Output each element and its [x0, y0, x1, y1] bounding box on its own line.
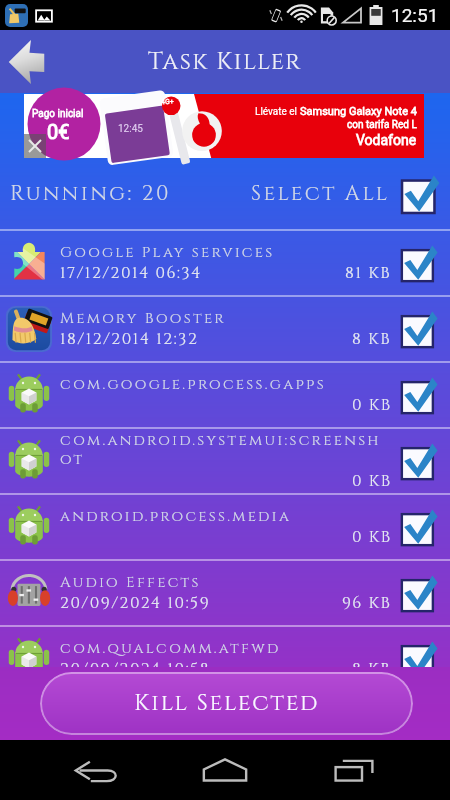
- staticText: Task Killer: [148, 46, 302, 78]
- button[interactable]: Back: [0, 33, 52, 91]
- staticText: com.google.process.gapps: [60, 374, 326, 394]
- button[interactable]: com.android.systemui:screenshot: [0, 429, 450, 493]
- staticText: Memory Booster: [60, 308, 226, 328]
- staticText: 8 KB: [352, 658, 392, 680]
- button[interactable]: Select All: [251, 171, 444, 217]
- button[interactable]: Google Play services: [0, 231, 450, 295]
- button[interactable]: Home: [160, 740, 289, 800]
- staticText: 17/12/2014 06:34: [60, 262, 203, 284]
- staticText: Audio Effects: [60, 572, 201, 592]
- staticText: Samsung Galaxy Note 4: [300, 105, 417, 118]
- button[interactable]: Recents: [289, 740, 418, 800]
- staticText: con tarifa Red L: [347, 119, 417, 131]
- staticText: 0 KB: [352, 394, 392, 416]
- button[interactable]: Back: [31, 740, 160, 800]
- staticText: android.process.media: [60, 506, 292, 526]
- staticText: 0 KB: [352, 470, 392, 492]
- staticText: 12:45: [118, 123, 143, 135]
- button[interactable]: 12:45: [24, 94, 424, 158]
- staticText: 4G+: [161, 98, 174, 106]
- staticText: com.qualcomm.atfwd: [60, 638, 281, 658]
- staticText: 0€: [47, 120, 70, 143]
- button[interactable]: com.qualcomm.atfwd: [0, 627, 450, 691]
- staticText: 12:51: [391, 4, 439, 26]
- staticText: 8 KB: [352, 328, 392, 350]
- staticText: Select All: [251, 180, 390, 208]
- button[interactable]: Close ad: [24, 134, 46, 158]
- staticText: 20/09/2024 10:58: [60, 658, 211, 680]
- button[interactable]: Audio Effects: [0, 561, 450, 625]
- staticText: Pago inicial: [32, 108, 84, 120]
- staticText: Vodafone: [356, 132, 417, 148]
- staticText: Running: 20: [10, 180, 172, 208]
- staticText: com.android.systemui:screenshot: [60, 430, 392, 470]
- staticText: 20/09/2024 10:59: [60, 592, 211, 614]
- staticText: Google Play services: [60, 242, 275, 262]
- staticText: 81 KB: [345, 262, 392, 284]
- button[interactable]: android.process.media: [0, 495, 450, 559]
- button[interactable]: Kill Selected: [40, 672, 413, 735]
- button[interactable]: com.google.process.gapps: [0, 363, 450, 427]
- staticText: 0 KB: [352, 526, 392, 548]
- staticText: Kill Selected: [134, 688, 320, 719]
- staticText: 18/12/2014 12:32: [60, 328, 199, 350]
- staticText: Llévate el: [255, 106, 300, 118]
- staticText: 96 KB: [342, 592, 392, 614]
- button[interactable]: Memory Booster: [0, 297, 450, 361]
